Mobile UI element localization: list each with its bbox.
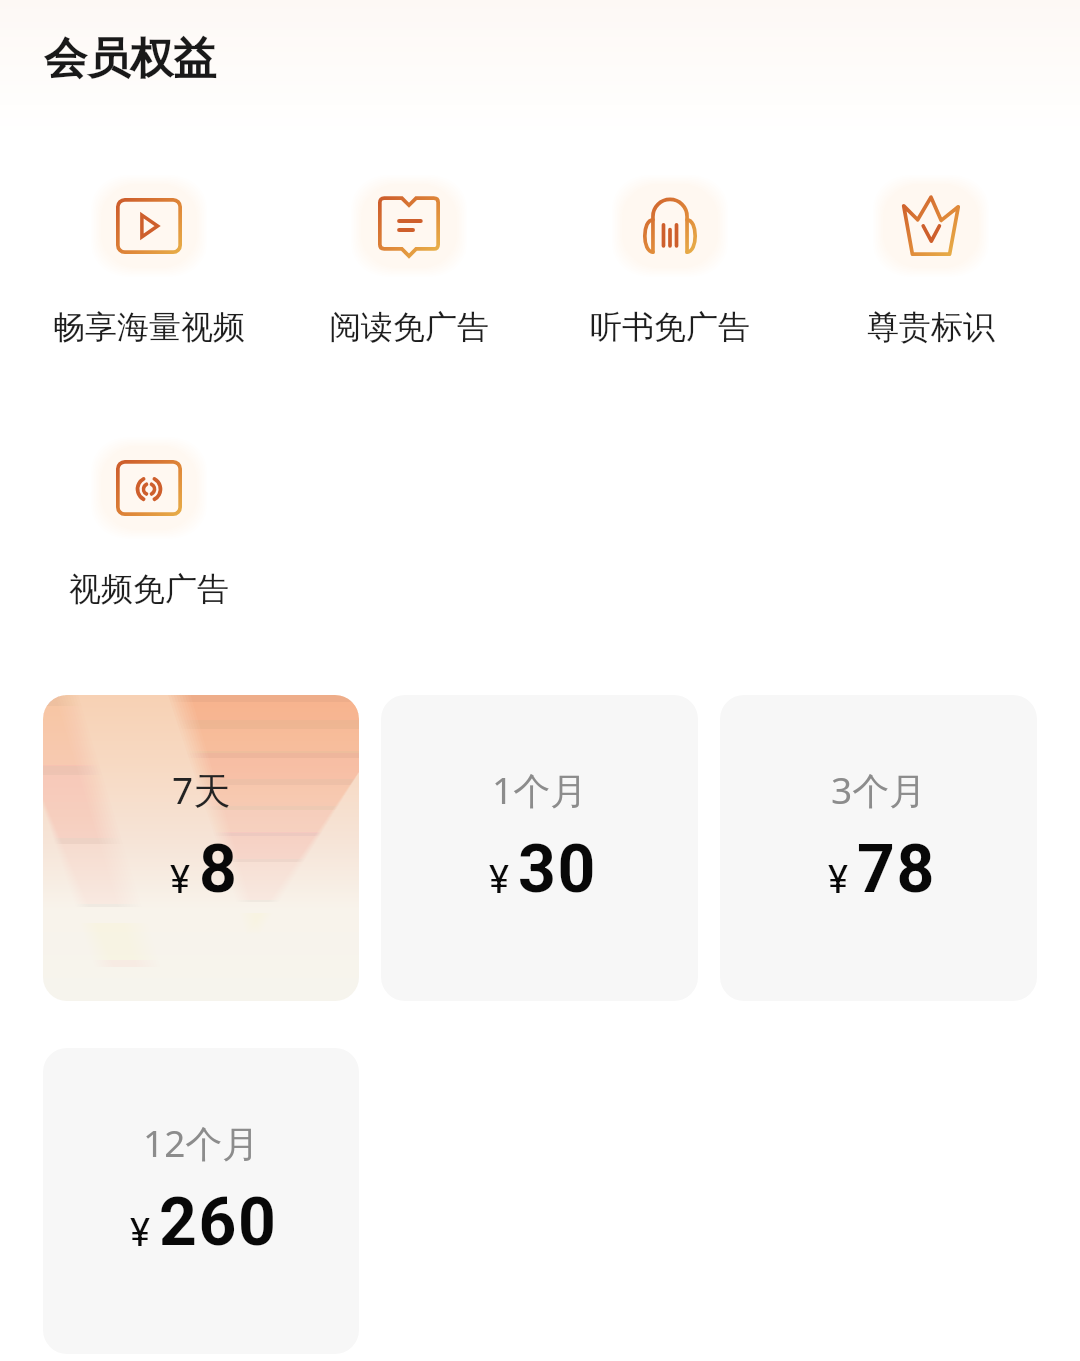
staticText: 7天 (172, 764, 231, 815)
staticText: 会员权益 (44, 32, 216, 86)
staticText: 78 (857, 831, 936, 908)
button[interactable]: 1个月 (381, 695, 698, 1001)
staticText: ¥ (828, 858, 848, 903)
staticText: ¥ (130, 1211, 150, 1256)
staticText: 阅读免广告 (329, 307, 489, 347)
staticText: 尊贵标识 (867, 307, 995, 347)
button[interactable]: 3个月 (720, 695, 1037, 1001)
staticText: ¥ (170, 858, 190, 903)
button[interactable]: 听书免广告 (539, 175, 800, 347)
staticText: 8 (199, 831, 239, 908)
staticText: 畅享海量视频 (53, 307, 245, 347)
staticText: 30 (518, 831, 597, 908)
staticText: ¥ (489, 858, 509, 903)
button[interactable]: 尊贵标识 (800, 175, 1061, 347)
staticText: 1个月 (492, 764, 588, 815)
staticText: 视频免广告 (69, 569, 229, 609)
staticText: 260 (159, 1184, 278, 1261)
staticText: 3个月 (831, 764, 927, 815)
button[interactable]: 视频免广告 (19, 437, 279, 609)
staticText: 听书免广告 (590, 307, 750, 347)
button[interactable]: 阅读免广告 (279, 175, 539, 347)
button[interactable]: 12个月 (43, 1048, 359, 1354)
button[interactable]: 7天 (43, 695, 359, 1001)
button[interactable]: 畅享海量视频 (19, 175, 279, 347)
staticText: 12个月 (143, 1117, 260, 1168)
